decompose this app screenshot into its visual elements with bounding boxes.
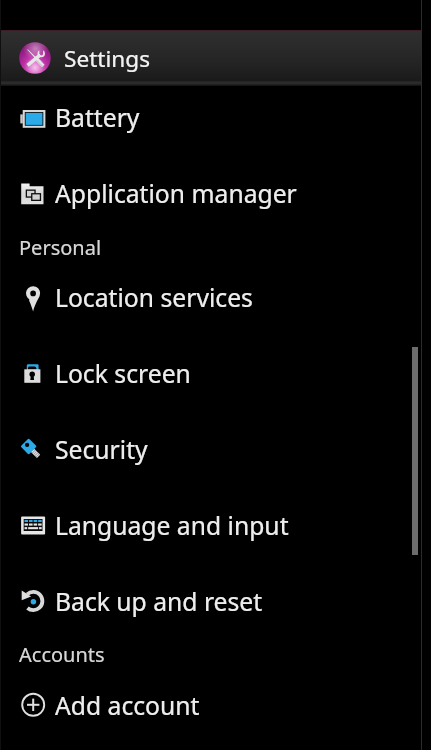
staticText: Location services — [55, 281, 253, 315]
staticText: Battery — [55, 101, 140, 135]
button[interactable]: Back up and reset — [0, 565, 431, 641]
staticText: Security — [55, 433, 148, 467]
staticText: Application manager — [55, 177, 297, 211]
staticText: Personal — [19, 234, 102, 261]
staticText: Language and input — [55, 509, 289, 543]
button[interactable]: Application manager — [0, 157, 431, 233]
button[interactable]: Security — [0, 413, 431, 489]
button[interactable]: Battery — [0, 81, 431, 157]
button[interactable]: Settings — [1, 30, 421, 86]
staticText: Accounts — [19, 641, 105, 668]
button[interactable]: Add account — [0, 669, 431, 745]
button[interactable]: Language and input — [0, 489, 431, 565]
button[interactable]: Location services — [0, 261, 431, 337]
other: Settings — [19, 42, 51, 74]
button[interactable]: Lock screen — [0, 337, 431, 413]
staticText: Add account — [55, 689, 200, 723]
staticText: Back up and reset — [55, 585, 263, 619]
staticText: Settings — [64, 43, 150, 74]
staticText: Lock screen — [55, 357, 191, 391]
